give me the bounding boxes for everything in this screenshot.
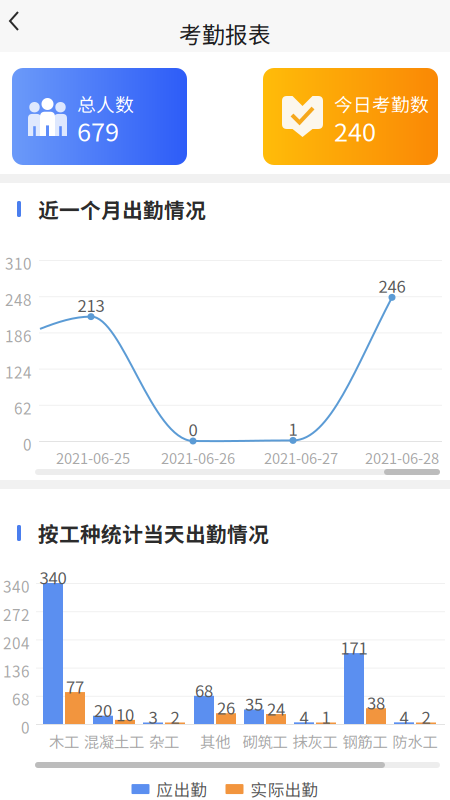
staticText: 310 [5,252,32,274]
staticText: 4 [399,704,408,728]
staticText: 38 [367,690,385,714]
staticText: 0 [188,417,197,441]
staticText: 2021-06-25 [56,447,130,468]
staticText: 77 [66,674,84,698]
staticText: 340 [3,575,30,597]
staticText: 防水工 [392,730,437,752]
staticText: 钢筋工 [342,730,387,752]
staticText: 1 [321,704,330,729]
staticText: 1 [288,416,297,440]
staticText: 0 [23,433,32,455]
staticText: 246 [378,273,405,297]
staticText: 4 [299,704,308,728]
staticText: 186 [5,324,32,347]
staticText: 杂工 [149,730,179,752]
staticText: 62 [14,397,32,419]
staticText: 204 [3,631,30,654]
staticText: 679 [77,112,119,149]
staticText: 今日考勤数 [334,90,429,117]
staticText: 0 [21,716,30,738]
staticText: 应出勤 [156,777,207,800]
staticText: 近一个月出勤情况 [38,194,206,224]
staticText: 木工 [49,730,79,752]
staticText: 136 [3,660,30,682]
staticText: 2021-06-26 [161,447,235,468]
button[interactable]: 总人数 [12,68,187,165]
staticText: 68 [12,688,30,710]
staticText: 272 [3,603,30,625]
staticText: 26 [217,695,235,719]
staticText: 171 [340,635,367,659]
staticText: 混凝土工 [84,730,144,752]
staticText: 35 [245,691,263,716]
staticText: 248 [5,288,32,310]
staticText: 240 [334,112,376,149]
staticText: 砌筑工 [242,730,287,752]
button[interactable]: 返回 [6,8,42,44]
staticText: 24 [267,696,285,720]
staticText: 68 [195,678,213,702]
staticText: 2021-06-27 [264,447,338,468]
staticText: 其他 [200,730,230,752]
staticText: 10 [116,702,134,726]
staticText: 340 [39,565,66,589]
staticText: 213 [77,293,104,317]
staticText: 实际出勤 [250,777,318,800]
staticText: 考勤报表 [179,17,271,50]
staticText: 2 [421,704,430,729]
staticText: 抹灰工 [292,730,337,752]
staticText: 20 [94,698,112,722]
staticText: 总人数 [77,90,134,117]
staticText: 2021-06-28 [365,447,439,468]
button[interactable]: 今日考勤数 [263,68,438,165]
staticText: 2 [170,704,179,729]
staticText: 3 [148,704,157,729]
staticText: 124 [5,361,32,383]
staticText: 按工种统计当天出勤情况 [38,518,269,548]
